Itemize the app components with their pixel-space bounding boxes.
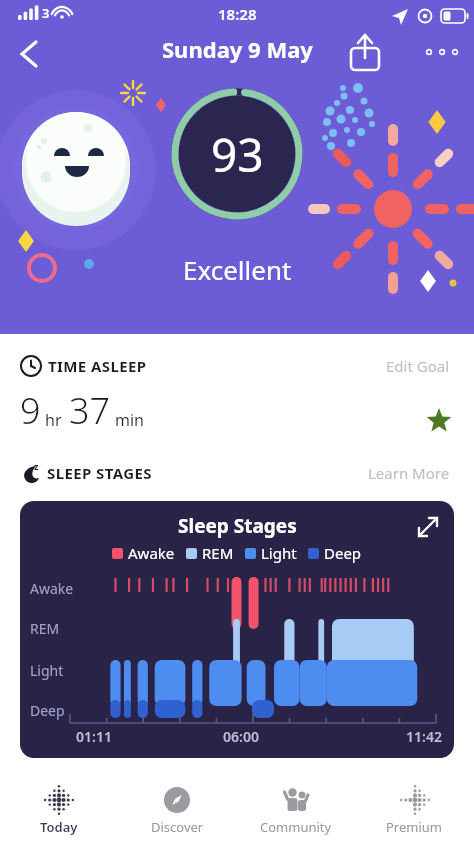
staticText: Awake	[30, 579, 74, 598]
staticText: Discover	[151, 818, 204, 836]
button[interactable]: Expand chart	[410, 509, 446, 545]
staticText: Light	[30, 661, 64, 680]
button[interactable]: Learn More	[364, 459, 454, 487]
staticText: z	[34, 460, 39, 472]
staticText: 37	[69, 386, 111, 435]
button[interactable]: Today	[0, 778, 118, 842]
staticText: Community	[260, 818, 332, 836]
staticText: min	[115, 409, 144, 431]
staticText: 93	[211, 123, 264, 186]
staticText: Premium	[386, 818, 443, 836]
staticText: TIME ASLEEP	[48, 356, 147, 376]
staticText: SLEEP STAGES	[47, 463, 152, 483]
staticText: 18:28	[218, 4, 257, 24]
button[interactable]: 93	[167, 84, 307, 224]
button[interactable]: Premium	[355, 778, 474, 842]
staticText: Excellent	[183, 252, 292, 287]
staticText: Deep	[324, 543, 362, 563]
button[interactable]: Back	[6, 30, 54, 78]
button[interactable]: Edit Goal	[382, 352, 454, 380]
staticText: Sunday 9 May	[162, 34, 313, 64]
staticText: Light	[261, 543, 297, 563]
staticText: Awake	[128, 543, 175, 563]
button[interactable]: Discover	[118, 778, 236, 842]
staticText: Sleep Stages	[178, 513, 297, 539]
staticText: REM	[30, 619, 60, 638]
staticText: 06:00	[223, 727, 259, 746]
staticText: Deep	[30, 701, 65, 720]
staticText: REM	[202, 543, 234, 563]
staticText: hr	[45, 409, 62, 431]
button[interactable]: Goal met	[424, 405, 454, 435]
staticText: 01:11	[76, 727, 112, 746]
staticText: 3	[42, 4, 50, 22]
button[interactable]: More options	[418, 28, 466, 76]
staticText: Edit Goal	[386, 356, 450, 376]
button[interactable]: Sleep Stages	[20, 501, 454, 758]
button[interactable]: Share	[341, 28, 389, 76]
button[interactable]: Community	[236, 778, 355, 842]
staticText: 9	[20, 386, 41, 435]
staticText: Learn More	[368, 463, 450, 483]
staticText: 11:42	[406, 727, 442, 746]
staticText: Today	[40, 818, 78, 836]
